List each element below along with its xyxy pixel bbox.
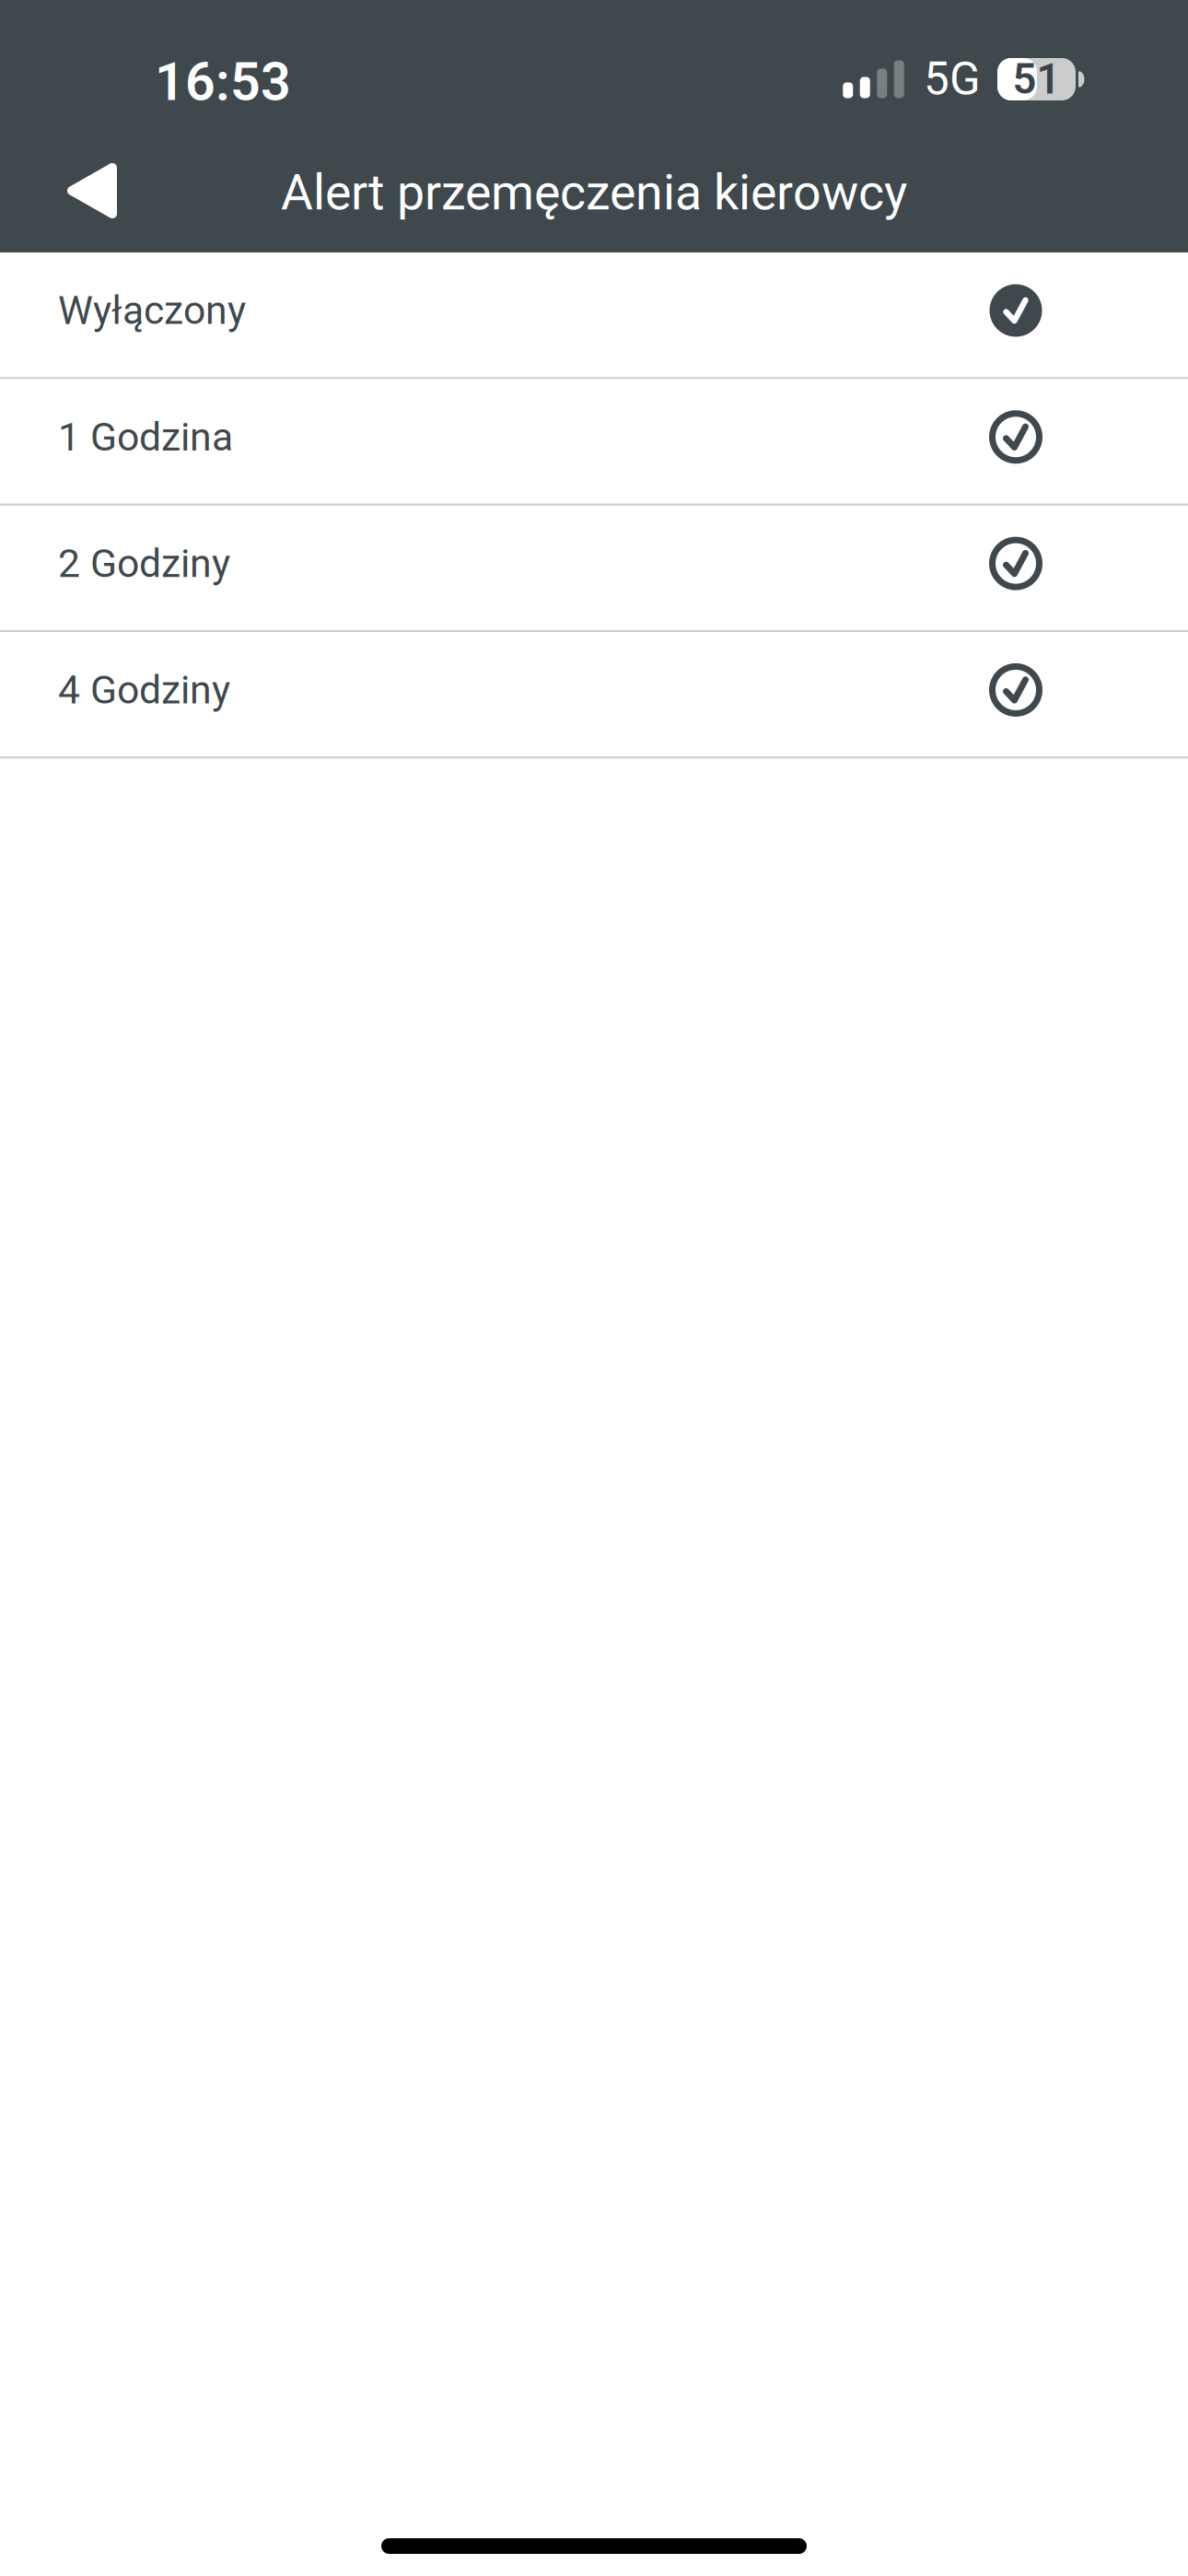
button[interactable]: 4 Godziny: [0, 632, 1188, 758]
staticText: Wyłączony: [58, 287, 246, 334]
button[interactable]: Back: [0, 129, 152, 252]
button[interactable]: 1 Godzina: [0, 379, 1188, 505]
staticText: 5G: [924, 53, 981, 106]
button[interactable]: Wyłączony: [0, 252, 1188, 379]
staticText: 16:53: [155, 51, 291, 113]
staticText: 1 Godzina: [58, 414, 233, 460]
button[interactable]: 2 Godziny: [0, 505, 1188, 632]
staticText: 2 Godziny: [58, 540, 230, 587]
staticText: 4 Godziny: [58, 667, 230, 713]
staticText: 51: [1013, 55, 1060, 104]
staticText: Alert przemęczenia kierowcy: [281, 164, 907, 221]
